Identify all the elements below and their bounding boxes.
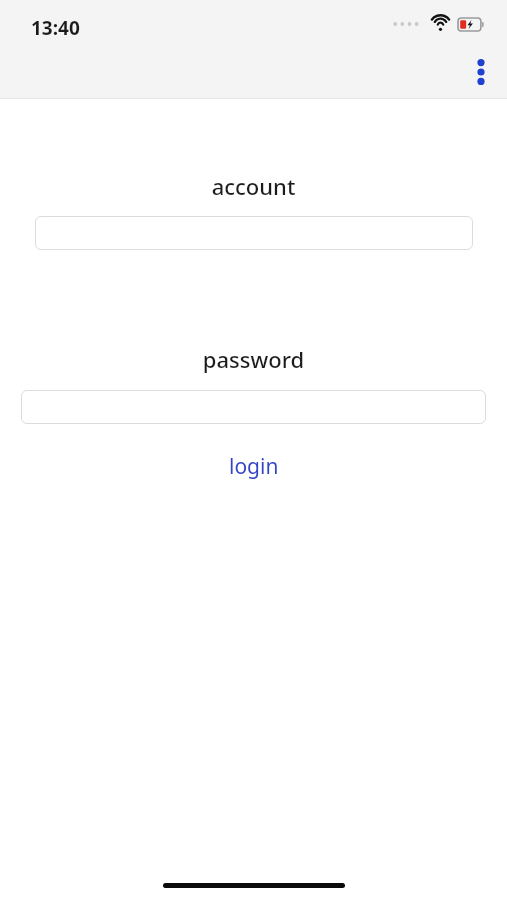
staticText: account: [0, 171, 507, 201]
staticText: password: [0, 344, 507, 374]
staticText: login: [229, 452, 279, 481]
staticText: 13:40: [31, 15, 80, 41]
button[interactable]: Account input field: [35, 216, 473, 250]
button[interactable]: More options: [461, 52, 501, 92]
button[interactable]: login: [215, 448, 293, 485]
button[interactable]: Password input field: [21, 390, 486, 424]
